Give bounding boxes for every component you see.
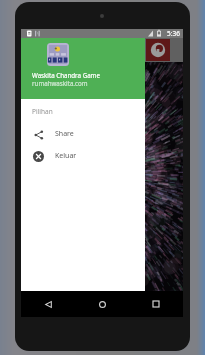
staticText: 5:36 [167,29,180,38]
button[interactable]: Home [92,294,112,314]
button[interactable]: Recent apps [146,294,166,314]
staticText: Keluar [55,151,77,161]
button[interactable]: Share [21,123,145,145]
staticText: rumahwaskita.com [32,79,88,87]
staticText: Pilihan [32,107,53,116]
button[interactable]: Keluar [21,145,145,167]
button[interactable]: Back [38,294,58,314]
staticText: Share [55,129,74,139]
staticText: Waskita Chandra Game [32,71,100,79]
